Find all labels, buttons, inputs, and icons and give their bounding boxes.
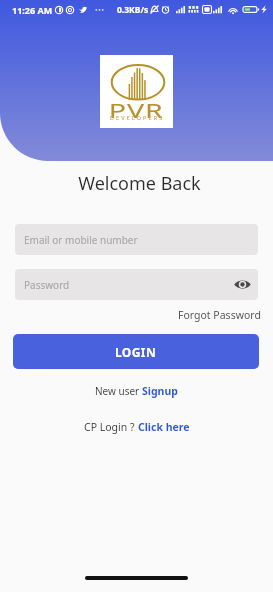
staticText: LOGIN	[115, 344, 157, 360]
button[interactable]: LOGIN	[13, 334, 259, 369]
button[interactable]: Click here	[138, 420, 190, 434]
staticText: CP Login ?	[84, 420, 138, 434]
button[interactable]: Show password	[230, 273, 254, 295]
button[interactable]: Email or mobile number	[15, 224, 258, 255]
staticText: New user	[95, 384, 142, 398]
staticText: 0.3KB/s	[117, 4, 149, 16]
staticText: 11:26 AM	[12, 4, 53, 16]
staticText: PVR	[109, 98, 164, 124]
staticText: Click here	[138, 420, 190, 434]
button[interactable]: Signup	[142, 384, 178, 398]
staticText: Welcome Back	[78, 171, 201, 196]
button[interactable]: Forgot Password	[176, 305, 263, 325]
staticText: Password	[24, 278, 70, 292]
staticText: DEVELOPERS	[110, 114, 165, 121]
button[interactable]: Password	[15, 269, 258, 300]
staticText: Forgot Password	[178, 308, 261, 322]
staticText: Email or mobile number	[24, 233, 138, 247]
staticText: Signup	[142, 384, 178, 398]
